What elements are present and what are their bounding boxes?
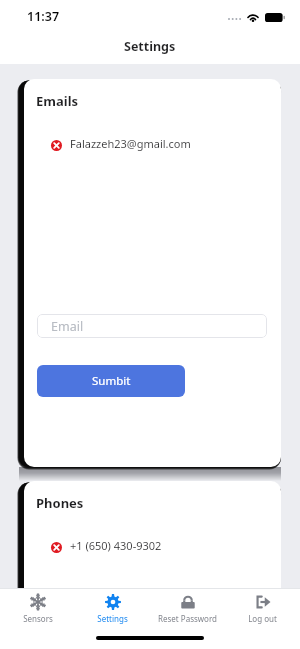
button[interactable]: Reset Password [150, 589, 225, 631]
other: Remove [51, 542, 62, 553]
staticText: 11:37 [27, 8, 60, 25]
button[interactable]: Sensors [0, 589, 75, 631]
staticText: Log out [248, 613, 277, 624]
staticText: Reset Password [158, 613, 217, 624]
staticText: Sumbit [92, 373, 131, 389]
staticText: +1 (650) 430-9302 [70, 538, 162, 553]
other: Remove [51, 140, 62, 151]
button[interactable]: Settings [75, 589, 150, 631]
staticText: Emails [36, 92, 79, 110]
staticText: Settings [124, 38, 176, 55]
staticText: Falazzeh23@gmail.com [70, 136, 191, 151]
staticText: Sensors [23, 613, 53, 624]
staticText: Email [51, 318, 84, 335]
button[interactable]: Sumbit [37, 365, 185, 397]
staticText: Phones [36, 494, 84, 512]
button[interactable]: Remove [24, 539, 281, 555]
button[interactable]: Log out [225, 589, 300, 631]
staticText: Settings [97, 613, 128, 624]
button[interactable]: Remove [24, 137, 281, 153]
button[interactable]: Email [37, 314, 267, 338]
